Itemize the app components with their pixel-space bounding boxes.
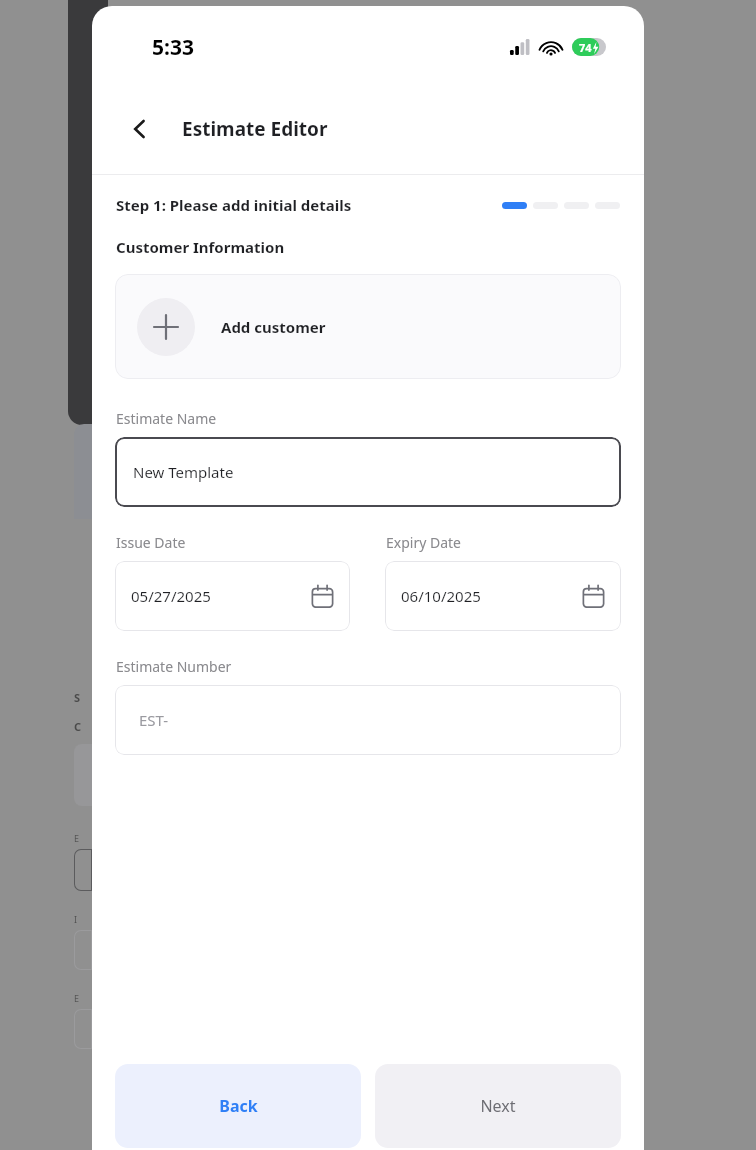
staticText: Expiry Date [386,533,461,552]
staticText: New Template [133,462,234,482]
staticText: 74 [579,40,592,55]
staticText: EST- [139,710,169,730]
button[interactable]: EST- [115,685,621,755]
staticText: Estimate Number [116,657,232,676]
staticText: C [74,719,82,734]
button[interactable]: New Template [115,437,621,507]
staticText: Add customer [221,317,326,337]
staticText: Estimate Editor [182,116,328,142]
button[interactable]: 05/27/2025 [115,561,350,631]
staticText: 5:33 [152,33,194,62]
staticText: Estimate Name [116,409,217,428]
button[interactable]: Back [116,105,164,153]
staticText: I [74,913,78,925]
button[interactable]: Back [115,1064,361,1148]
staticText: Back [219,1095,258,1117]
staticText: 06/10/2025 [401,586,481,606]
staticText: E [74,832,80,844]
staticText: Next [480,1095,516,1117]
staticText: E [74,992,80,1004]
staticText: Issue Date [116,533,186,552]
button[interactable]: Add customer [115,274,621,379]
staticText: Step 1: Please add initial details [116,195,352,215]
staticText: S [74,690,81,705]
button[interactable]: Next [375,1064,621,1148]
staticText: Customer Information [116,237,285,257]
staticText: 05/27/2025 [131,586,211,606]
button[interactable]: 06/10/2025 [385,561,621,631]
